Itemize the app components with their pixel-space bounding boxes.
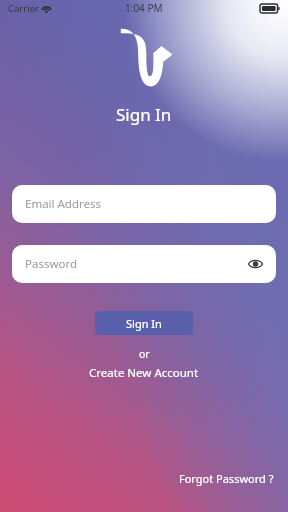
button[interactable]: Show password bbox=[244, 253, 266, 275]
button[interactable]: Sign In bbox=[95, 311, 193, 335]
staticText: Email Address bbox=[25, 196, 102, 212]
staticText: Forgot Password ? bbox=[179, 471, 274, 486]
staticText: Create New Account bbox=[89, 365, 199, 381]
button[interactable]: Email Address bbox=[12, 185, 276, 223]
button[interactable]: Forgot Password ? bbox=[175, 468, 278, 489]
staticText: or bbox=[139, 347, 150, 361]
button[interactable]: Password bbox=[12, 245, 276, 283]
button[interactable]: Create New Account bbox=[83, 363, 205, 383]
staticText: Sign In bbox=[116, 103, 172, 126]
other: App logo bbox=[115, 25, 173, 89]
other: Battery full bbox=[260, 4, 280, 13]
staticText: Password bbox=[25, 256, 78, 272]
other: Wi-Fi signal bbox=[41, 4, 52, 13]
staticText: 1:04 PM bbox=[125, 1, 163, 15]
staticText: Carrier bbox=[8, 2, 39, 15]
staticText: Sign In bbox=[126, 316, 162, 331]
